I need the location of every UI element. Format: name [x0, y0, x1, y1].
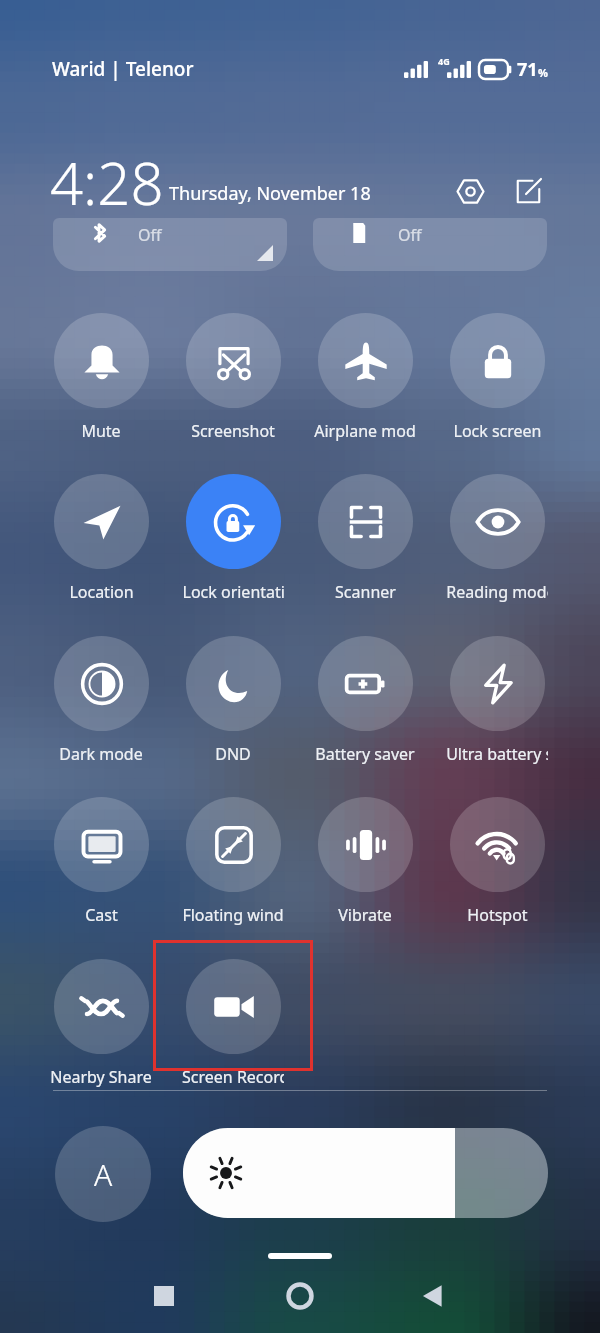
button[interactable]: Reading mode	[431, 474, 563, 603]
button[interactable]: Lock orientation	[167, 474, 299, 603]
button[interactable]: Nearby Share	[35, 959, 167, 1088]
staticText: Screenshot	[191, 420, 275, 442]
staticText: 4:28	[50, 143, 164, 222]
button[interactable]: Hotspot	[431, 797, 563, 926]
button[interactable]: Off	[313, 218, 547, 271]
staticText: Nearby Share	[50, 1066, 152, 1088]
button[interactable]: Screen Recorder	[167, 959, 299, 1088]
staticText: Ultra battery saver	[446, 743, 548, 765]
button[interactable]: Brightness	[183, 1128, 548, 1218]
button[interactable]: Ultra battery saver	[431, 636, 563, 765]
staticText: Screen Recorder	[182, 1066, 284, 1088]
button[interactable]: Back	[406, 1269, 460, 1323]
staticText: Off	[138, 224, 162, 246]
staticText: Hotspot	[467, 904, 528, 926]
staticText: 71	[517, 57, 538, 82]
button[interactable]: Mute	[35, 313, 167, 442]
staticText: Location	[69, 581, 134, 603]
button[interactable]: Home	[273, 1269, 327, 1323]
staticText: A	[94, 1154, 113, 1195]
button[interactable]: Screenshot	[167, 313, 299, 442]
staticText: 4G	[438, 55, 450, 67]
button[interactable]: Airplane mode	[299, 313, 431, 442]
button[interactable]: Scanner	[299, 474, 431, 603]
staticText: Reading mode	[446, 581, 548, 603]
button[interactable]: Lock screen	[431, 313, 563, 442]
staticText: Lock screen	[453, 420, 542, 442]
button[interactable]: Recents	[137, 1269, 191, 1323]
staticText: Battery saver	[315, 743, 415, 765]
button[interactable]: Dark mode	[35, 636, 167, 765]
staticText: Airplane mode	[314, 420, 416, 442]
button[interactable]: Cast	[35, 797, 167, 926]
staticText: %	[538, 65, 548, 80]
button[interactable]: Auto brightness	[55, 1126, 151, 1222]
button[interactable]: Quick settings options	[448, 169, 492, 213]
button[interactable]: Battery saver	[299, 636, 431, 765]
button[interactable]: Vibrate	[299, 797, 431, 926]
staticText: DND	[215, 743, 251, 765]
staticText: Dark mode	[59, 743, 143, 765]
staticText: Scanner	[335, 581, 396, 603]
staticText: Lock orientation	[182, 581, 284, 603]
button[interactable]: Floating window	[167, 797, 299, 926]
staticText: Floating window	[182, 904, 284, 926]
staticText: Vibrate	[338, 904, 392, 926]
staticText: Warid | Telenor	[52, 56, 194, 82]
staticText: Off	[398, 224, 422, 246]
button[interactable]: Off	[53, 218, 287, 271]
button[interactable]: Edit tiles	[506, 169, 550, 213]
button[interactable]: Location	[35, 474, 167, 603]
staticText: Mute	[81, 420, 121, 442]
button[interactable]: DND	[167, 636, 299, 765]
staticText: Cast	[85, 904, 118, 926]
staticText: Thursday, November 18	[169, 181, 371, 206]
